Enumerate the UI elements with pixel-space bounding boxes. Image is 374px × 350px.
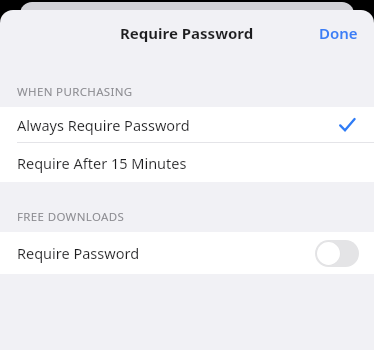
button[interactable]: Done bbox=[303, 15, 374, 51]
other: Selected bbox=[337, 115, 357, 135]
staticText: Always Require Password bbox=[17, 115, 337, 135]
staticText: Done bbox=[319, 23, 358, 43]
button[interactable]: Always Require Password bbox=[0, 107, 374, 142]
staticText: FREE DOWNLOADS bbox=[17, 209, 125, 225]
button[interactable]: Require After 15 Minutes bbox=[0, 143, 374, 182]
staticText: Require Password bbox=[120, 23, 254, 43]
staticText: Require After 15 Minutes bbox=[17, 153, 187, 173]
staticText: Require Password bbox=[17, 243, 315, 263]
staticText: WHEN PURCHASING bbox=[17, 84, 133, 100]
button[interactable]: Require Password toggle bbox=[315, 240, 359, 267]
button[interactable]: Require Password bbox=[0, 232, 374, 274]
